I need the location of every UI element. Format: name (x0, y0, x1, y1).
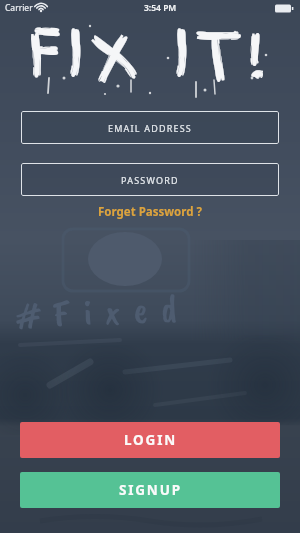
staticText: PASSWORD (121, 174, 179, 186)
staticText: FIX IT! (0, 8, 300, 102)
button[interactable]: Forget Password ? (98, 204, 202, 220)
button[interactable]: PASSWORD (21, 163, 279, 196)
staticText: 3:54 PM (144, 2, 177, 14)
staticText: Carrier (5, 2, 33, 14)
button[interactable]: EMAIL ADDRESS (21, 111, 279, 144)
staticText: LOGIN (124, 431, 177, 449)
button[interactable]: LOGIN (20, 422, 280, 458)
button[interactable]: SIGNUP (20, 472, 280, 508)
staticText: EMAIL ADDRESS (108, 122, 193, 134)
staticText: SIGNUP (119, 481, 182, 499)
staticText: #Fixed (17, 283, 192, 340)
